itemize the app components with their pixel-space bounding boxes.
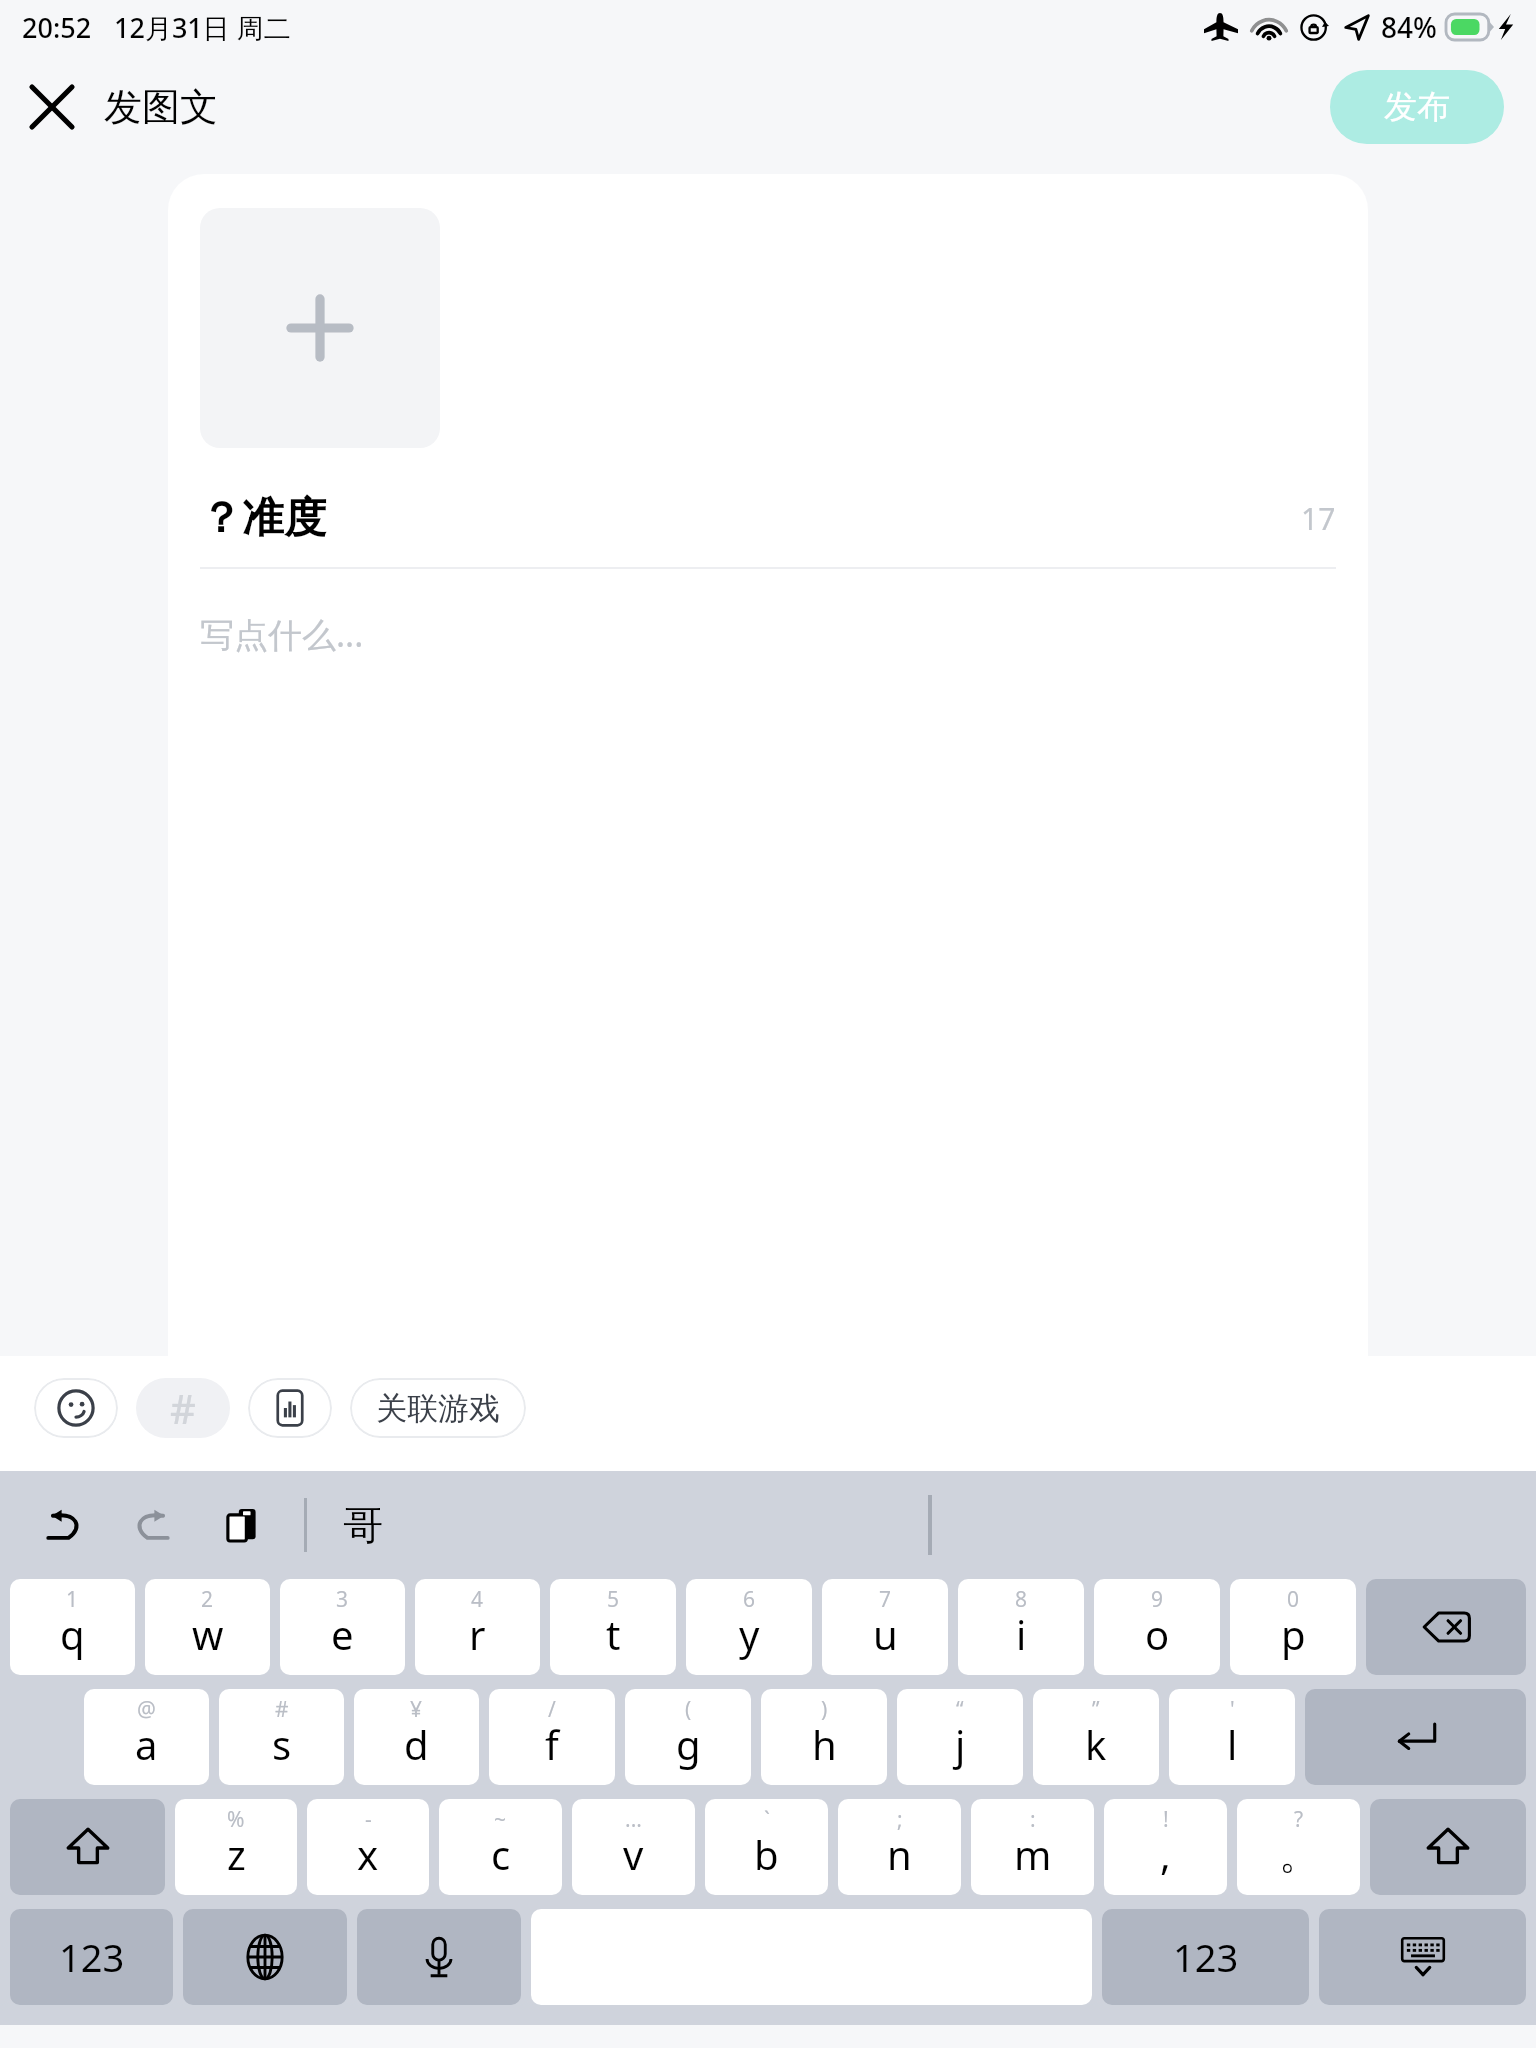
button[interactable]: 8 bbox=[958, 1579, 1084, 1675]
button[interactable]: Add image bbox=[200, 208, 440, 448]
button[interactable]: Close bbox=[0, 55, 104, 159]
staticText: ; bbox=[897, 1805, 903, 1834]
button[interactable]: ! bbox=[1104, 1799, 1227, 1895]
staticText: z bbox=[227, 1827, 246, 1881]
staticText: 1 bbox=[66, 1585, 79, 1614]
button[interactable]: Switch language bbox=[183, 1909, 347, 2005]
button[interactable]: ？准度 bbox=[200, 492, 1336, 569]
button[interactable]: 5 bbox=[550, 1579, 676, 1675]
button[interactable]: 写点什么... bbox=[200, 611, 1368, 657]
staticText: 发布 bbox=[1384, 86, 1450, 128]
button[interactable]: 4 bbox=[415, 1579, 540, 1675]
staticText: % bbox=[227, 1805, 245, 1834]
staticText: f bbox=[545, 1717, 559, 1771]
staticText: : bbox=[1030, 1805, 1036, 1834]
button[interactable]: 哥 bbox=[343, 1500, 383, 1550]
staticText: 123 bbox=[59, 1931, 125, 1983]
staticText: ？准度 bbox=[200, 492, 326, 545]
button[interactable]: 1 bbox=[10, 1579, 135, 1675]
staticText: c bbox=[491, 1827, 511, 1881]
button[interactable]: Vote bbox=[248, 1378, 332, 1438]
staticText: i bbox=[1016, 1607, 1027, 1661]
staticText: 20:52 bbox=[22, 9, 92, 46]
staticText: d bbox=[404, 1717, 429, 1771]
staticText: 5 bbox=[607, 1585, 620, 1614]
button[interactable]: 关联游戏 bbox=[350, 1378, 526, 1438]
button[interactable]: 123 bbox=[10, 1909, 173, 2005]
button[interactable]: Clipboard bbox=[210, 1492, 276, 1558]
button[interactable]: @ bbox=[84, 1689, 209, 1785]
button[interactable]: Redo bbox=[120, 1492, 186, 1558]
staticText: ? bbox=[1294, 1805, 1304, 1834]
staticText: 3 bbox=[336, 1585, 349, 1614]
staticText: ' bbox=[1230, 1695, 1235, 1724]
button[interactable]: “ bbox=[897, 1689, 1023, 1785]
staticText: ¥ bbox=[410, 1695, 423, 1724]
staticText: w bbox=[192, 1607, 224, 1661]
button[interactable]: ) bbox=[761, 1689, 887, 1785]
button[interactable]: Undo bbox=[30, 1492, 96, 1558]
button[interactable]: Shift bbox=[1370, 1799, 1526, 1895]
staticText: “ bbox=[956, 1695, 964, 1724]
staticText: q bbox=[60, 1607, 85, 1661]
staticText: b bbox=[754, 1827, 779, 1881]
button[interactable]: 0 bbox=[1230, 1579, 1356, 1675]
button[interactable]: ` bbox=[705, 1799, 828, 1895]
staticText: e bbox=[331, 1607, 354, 1661]
button[interactable]: ; bbox=[838, 1799, 961, 1895]
button[interactable]: ” bbox=[1033, 1689, 1159, 1785]
button[interactable]: 发布 bbox=[1330, 70, 1504, 144]
button[interactable]: % bbox=[175, 1799, 297, 1895]
button[interactable]: Topic bbox=[136, 1378, 230, 1438]
staticText: k bbox=[1085, 1717, 1107, 1771]
staticText: v bbox=[623, 1827, 644, 1881]
staticText: x bbox=[357, 1827, 379, 1881]
button[interactable]: 123 bbox=[1102, 1909, 1309, 2005]
button[interactable]: ( bbox=[625, 1689, 751, 1785]
staticText: # bbox=[170, 1381, 196, 1435]
button[interactable]: / bbox=[489, 1689, 615, 1785]
button[interactable]: Backspace bbox=[1366, 1579, 1526, 1675]
staticText: 9 bbox=[1151, 1585, 1164, 1614]
staticText: p bbox=[1281, 1607, 1306, 1661]
staticText: 12月31日 周二 bbox=[114, 9, 291, 46]
staticText: y bbox=[739, 1607, 760, 1661]
button[interactable]: Emoji bbox=[34, 1378, 118, 1438]
staticText: ` bbox=[764, 1805, 770, 1834]
button[interactable]: Hide keyboard bbox=[1319, 1909, 1526, 2005]
staticText: 6 bbox=[743, 1585, 756, 1614]
button[interactable]: ... bbox=[572, 1799, 695, 1895]
button[interactable]: ~ bbox=[439, 1799, 562, 1895]
staticText: 8 bbox=[1015, 1585, 1028, 1614]
button[interactable]: Enter bbox=[1305, 1689, 1526, 1785]
button[interactable]: 7 bbox=[822, 1579, 948, 1675]
staticText: / bbox=[548, 1695, 556, 1724]
staticText: - bbox=[365, 1805, 372, 1834]
staticText: 7 bbox=[879, 1585, 892, 1614]
staticText: ” bbox=[1092, 1695, 1100, 1724]
staticText: a bbox=[135, 1717, 158, 1771]
staticText: ... bbox=[625, 1805, 642, 1834]
button[interactable]: Voice input bbox=[357, 1909, 521, 2005]
button[interactable]: ? bbox=[1237, 1799, 1360, 1895]
staticText: ! bbox=[1163, 1805, 1169, 1834]
button[interactable]: 9 bbox=[1094, 1579, 1220, 1675]
staticText: ( bbox=[685, 1695, 692, 1724]
button[interactable]: - bbox=[307, 1799, 429, 1895]
staticText: 84% bbox=[1381, 8, 1437, 46]
button[interactable]: ¥ bbox=[354, 1689, 479, 1785]
button[interactable]: 3 bbox=[280, 1579, 405, 1675]
staticText: 123 bbox=[1173, 1931, 1239, 1983]
staticText: g bbox=[676, 1717, 701, 1771]
button[interactable]: ' bbox=[1169, 1689, 1295, 1785]
button[interactable]: 2 bbox=[145, 1579, 270, 1675]
button[interactable]: # bbox=[219, 1689, 344, 1785]
button[interactable]: 6 bbox=[686, 1579, 812, 1675]
staticText: 关联游戏 bbox=[376, 1389, 500, 1428]
button[interactable]: Shift bbox=[10, 1799, 165, 1895]
staticText: 2 bbox=[201, 1585, 214, 1614]
button[interactable]: : bbox=[971, 1799, 1094, 1895]
staticText: # bbox=[275, 1695, 289, 1724]
staticText: j bbox=[955, 1717, 966, 1771]
